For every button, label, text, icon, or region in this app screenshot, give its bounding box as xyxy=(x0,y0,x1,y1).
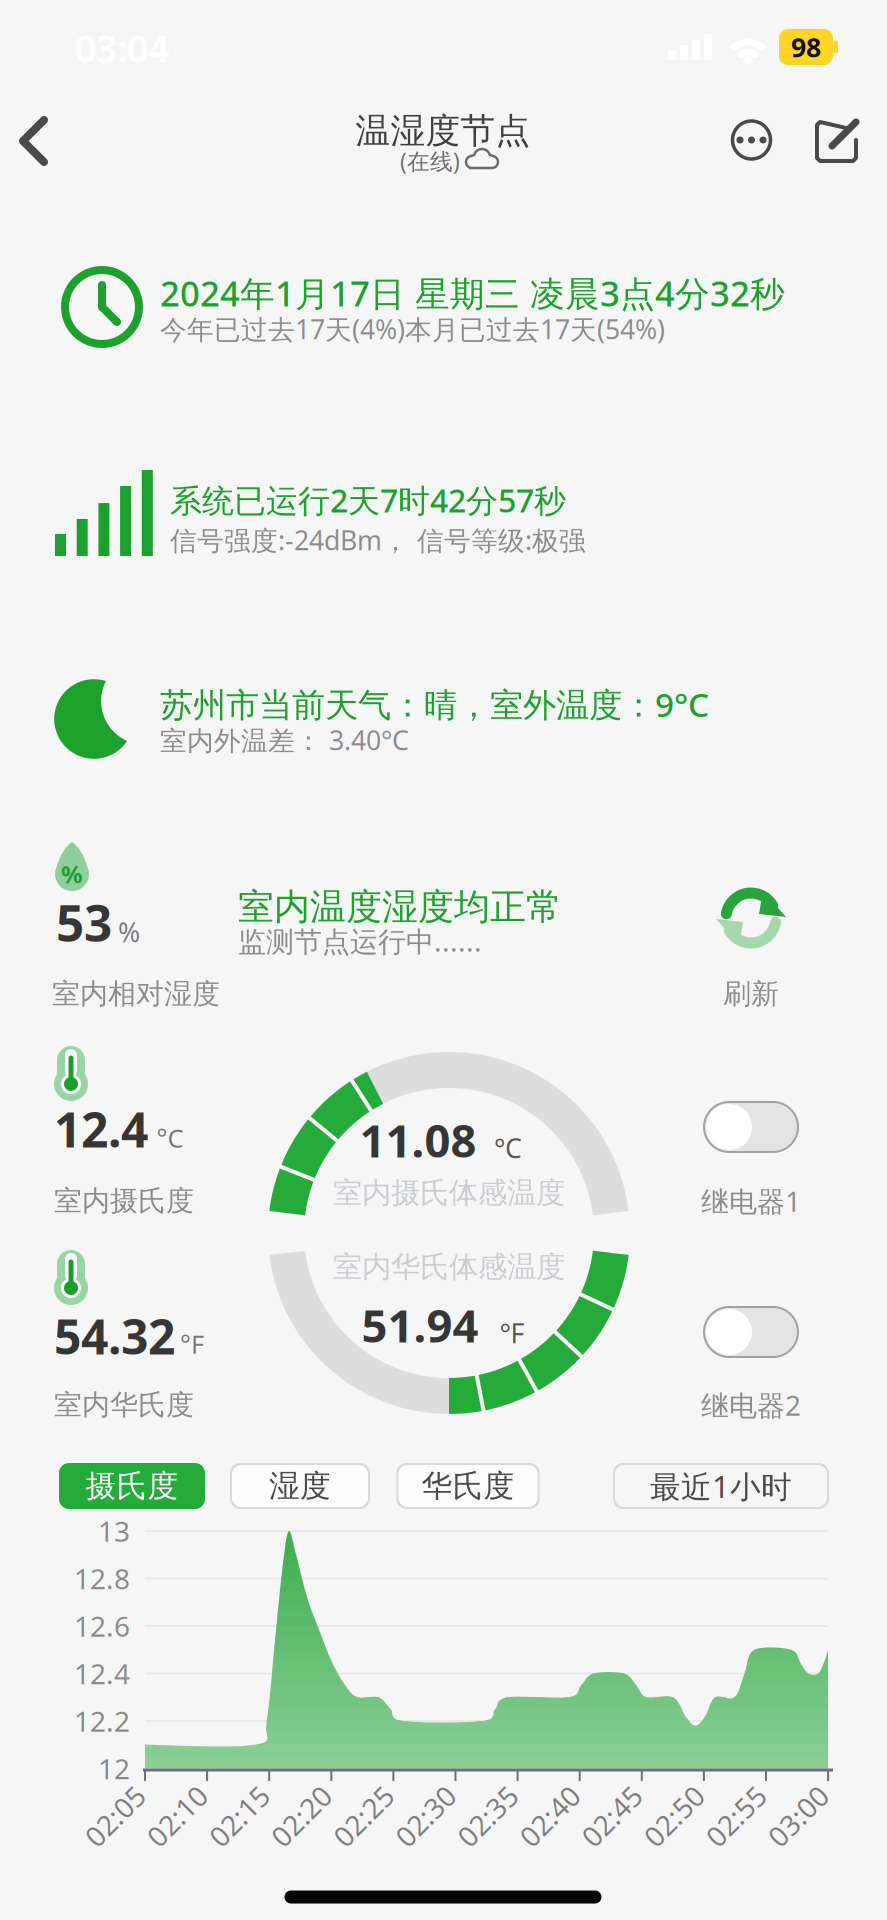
staticText: 摄氏度 xyxy=(85,1467,178,1505)
staticText: 监测节点运行中...... xyxy=(238,922,482,960)
staticText: 51.94 xyxy=(361,1295,478,1355)
staticText: 12.2 xyxy=(74,1702,130,1740)
staticText: 12.6 xyxy=(74,1607,130,1645)
staticText: °C xyxy=(494,1130,522,1166)
staticText: 98 xyxy=(791,29,821,65)
staticText: 室内华氏体感温度 xyxy=(333,1249,565,1285)
staticText: 室内华氏度 xyxy=(54,1388,194,1422)
button[interactable]: 湿度 xyxy=(230,1463,370,1509)
staticText: 02:50 xyxy=(638,1797,710,1835)
button[interactable]: 摄氏度 xyxy=(59,1463,205,1509)
staticText: 湿度 xyxy=(269,1467,331,1505)
staticText: 11.08 xyxy=(359,1110,476,1170)
staticText: 12.4 xyxy=(74,1655,130,1692)
staticText: 02:20 xyxy=(265,1797,337,1835)
staticText: 室内摄氏度 xyxy=(54,1184,194,1218)
staticText: 温湿度节点 xyxy=(355,110,530,152)
staticText: 02:25 xyxy=(327,1797,399,1835)
staticText: 02:55 xyxy=(700,1797,772,1835)
staticText: 02:05 xyxy=(79,1797,151,1835)
staticText: 54.32 xyxy=(54,1304,175,1368)
button[interactable]: Back xyxy=(11,113,55,169)
staticText: 13 xyxy=(98,1512,130,1550)
staticText: 03:04 xyxy=(75,23,169,73)
button[interactable]: More xyxy=(727,116,775,164)
staticText: °F xyxy=(180,1327,204,1361)
button[interactable]: 继电器1 xyxy=(703,1101,799,1153)
staticText: 华氏度 xyxy=(421,1467,514,1505)
staticText: % xyxy=(61,858,83,890)
button[interactable]: Edit xyxy=(812,114,864,166)
staticText: 继电器2 xyxy=(701,1386,801,1424)
staticText: °C xyxy=(156,1121,183,1155)
staticText: 今年已过去17天(4%)本月已过去17天(54%) xyxy=(160,311,665,347)
staticText: 02:15 xyxy=(203,1797,275,1835)
staticText: 03:00 xyxy=(762,1797,834,1835)
staticText: 室内温度湿度均正常 xyxy=(238,885,562,929)
staticText: 苏州市当前天气：晴，室外温度：9°C xyxy=(160,682,709,726)
staticText: 12.8 xyxy=(74,1560,130,1597)
staticText: °F xyxy=(499,1315,524,1351)
staticText: 53 xyxy=(56,889,112,955)
button[interactable]: 继电器2 xyxy=(703,1306,799,1358)
button[interactable]: Refresh xyxy=(709,876,793,960)
staticText: 信号强度:-24dBm， 信号等级:极强 xyxy=(170,522,586,558)
staticText: 02:30 xyxy=(389,1797,461,1835)
staticText: 刷新 xyxy=(723,977,779,1011)
staticText: 继电器1 xyxy=(701,1182,801,1220)
staticText: 02:45 xyxy=(576,1797,648,1835)
staticText: (在线) xyxy=(400,146,460,176)
button[interactable]: 华氏度 xyxy=(396,1463,539,1509)
staticText: 室内摄氏体感温度 xyxy=(333,1175,565,1211)
staticText: % xyxy=(118,914,140,950)
staticText: 2024年1月17日 星期三 凌晨3点4分32秒 xyxy=(160,270,785,316)
staticText: 室内相对湿度 xyxy=(52,977,220,1011)
staticText: 室内外温差： 3.40°C xyxy=(160,722,409,758)
staticText: 12 xyxy=(98,1750,130,1787)
staticText: 最近1小时 xyxy=(650,1466,792,1506)
staticText: 系统已运行2天7时42分57秒 xyxy=(170,479,566,521)
staticText: 02:35 xyxy=(452,1797,524,1835)
button[interactable]: 最近1小时 xyxy=(613,1463,829,1509)
staticText: 02:40 xyxy=(514,1797,586,1835)
staticText: 12.4 xyxy=(54,1097,148,1161)
staticText: 02:10 xyxy=(141,1797,213,1835)
